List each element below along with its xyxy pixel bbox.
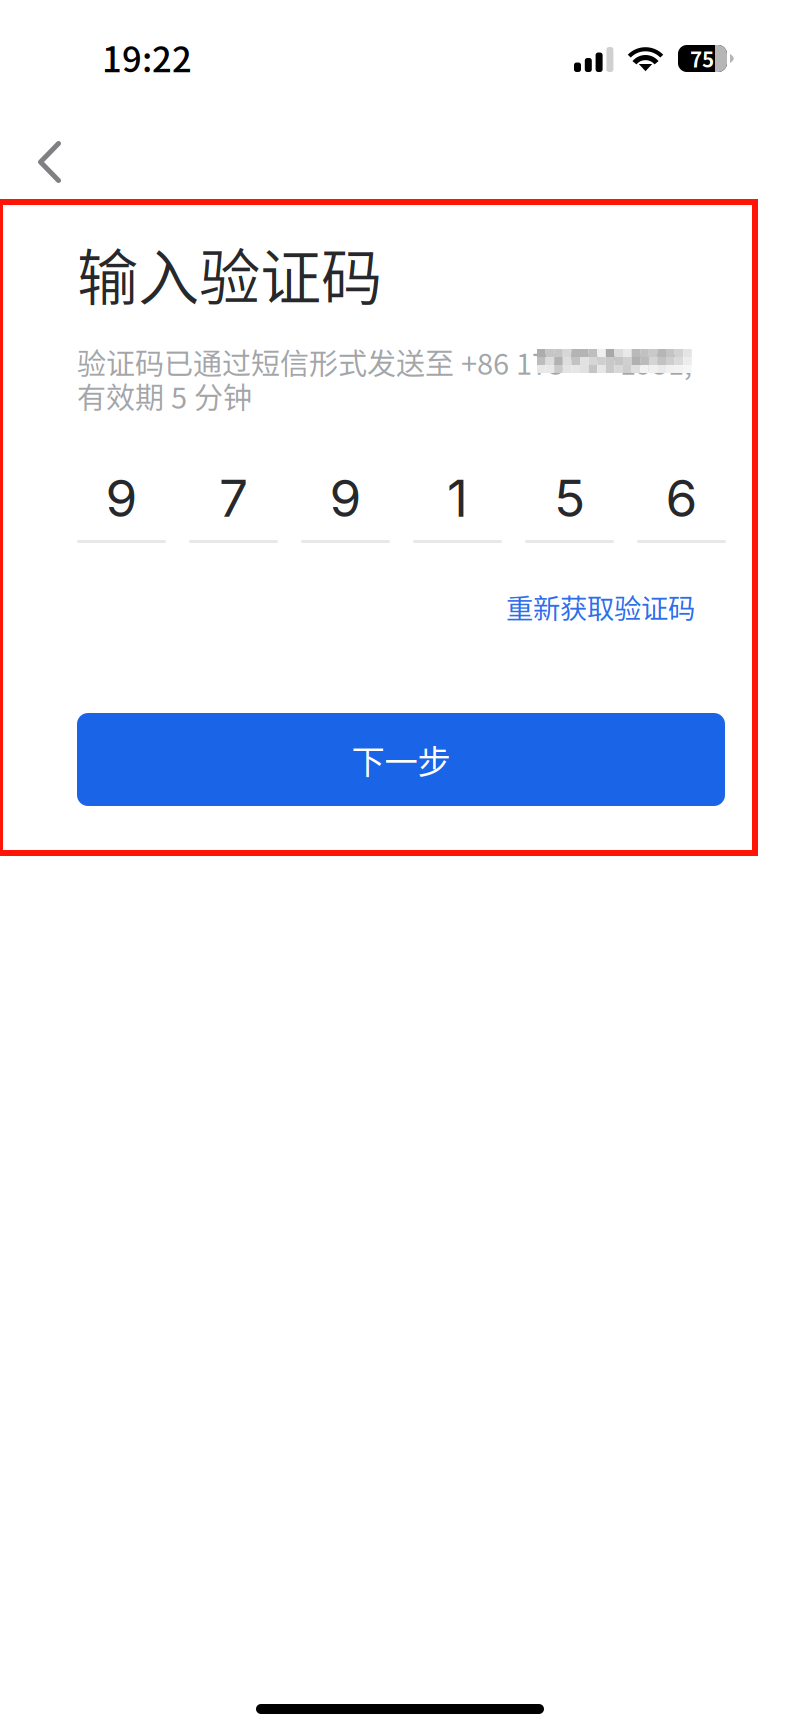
staticText: 有效期 5 分钟 xyxy=(77,375,252,417)
staticText: 下一步 xyxy=(351,735,450,784)
staticText: 6 xyxy=(665,467,697,529)
staticText: 75 xyxy=(690,43,714,73)
button[interactable]: Back xyxy=(12,121,87,203)
button[interactable]: 下一步 xyxy=(77,713,725,806)
staticText: 19:22 xyxy=(102,32,192,82)
staticText: 验证码已通过短信形式发送至 +86 173****1951, xyxy=(77,341,692,383)
staticText: 重新获取验证码 xyxy=(506,587,695,627)
staticText: 9 xyxy=(329,467,361,529)
staticText: 7 xyxy=(219,467,248,529)
staticText: 1 xyxy=(447,467,468,529)
button[interactable]: 重新获取验证码 xyxy=(497,576,704,638)
staticText: 9 xyxy=(105,467,137,529)
staticText: 5 xyxy=(554,467,585,529)
staticText: 输入验证码 xyxy=(77,229,382,318)
